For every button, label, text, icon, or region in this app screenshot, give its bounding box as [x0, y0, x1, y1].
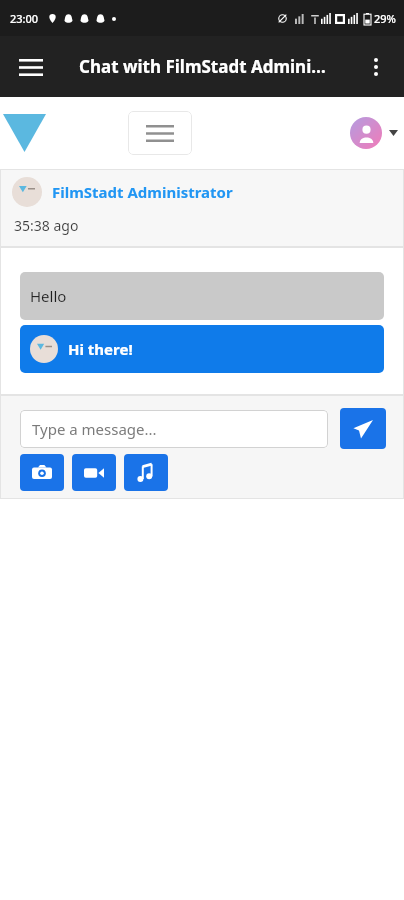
button[interactable]: Account	[350, 117, 398, 149]
button[interactable]: FilmStadt home	[2, 111, 46, 155]
staticText: Hello	[30, 286, 67, 306]
button[interactable]: Type a message...	[20, 410, 328, 448]
staticText: Type a message...	[32, 419, 157, 439]
button[interactable]: Record video	[72, 454, 116, 491]
staticText: 29%	[374, 11, 396, 26]
button[interactable]: Hi there!	[20, 325, 384, 373]
staticText: 23:00	[10, 11, 39, 26]
button[interactable]: FilmStadt Administrator	[52, 182, 233, 202]
button[interactable]: Record audio	[124, 454, 168, 491]
button[interactable]: More options	[354, 45, 398, 89]
button[interactable]: Take photo	[20, 454, 64, 491]
staticText: Chat with FilmStadt Admini…	[79, 55, 326, 78]
staticText: Hi there!	[68, 339, 133, 359]
staticText: 35:38 ago	[14, 216, 79, 235]
button[interactable]: Hello	[20, 272, 384, 320]
button[interactable]: Menu	[128, 111, 192, 155]
button[interactable]: Send	[340, 408, 386, 449]
button[interactable]: Open navigation menu	[8, 44, 54, 90]
